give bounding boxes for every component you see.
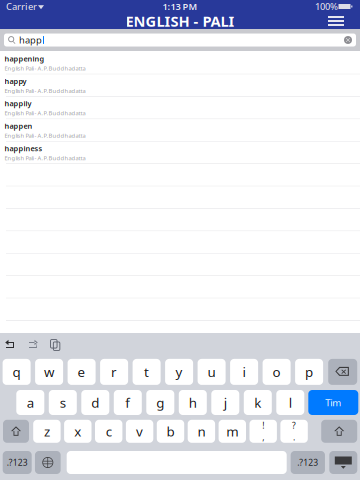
button[interactable]: Redo bbox=[26, 339, 40, 351]
staticText: x bbox=[74, 422, 81, 440]
button[interactable]: p bbox=[295, 359, 323, 385]
staticText: d bbox=[91, 394, 99, 411]
button[interactable]: b bbox=[157, 420, 184, 443]
staticText: m bbox=[226, 422, 238, 440]
button[interactable]: Hide keyboard bbox=[329, 451, 357, 474]
staticText: .?123 bbox=[297, 457, 318, 468]
staticText: happen bbox=[4, 121, 32, 131]
button[interactable]: Tim bbox=[308, 390, 358, 415]
staticText: English Pali - A.P.Buddhadatta bbox=[4, 64, 85, 72]
button[interactable]: happy bbox=[0, 74, 360, 97]
button[interactable]: x bbox=[64, 420, 91, 443]
button[interactable]: Next keyboard bbox=[35, 451, 61, 474]
button[interactable]: h bbox=[179, 390, 207, 415]
staticText: happy bbox=[4, 76, 26, 86]
staticText: 100% bbox=[315, 0, 338, 13]
staticText: r bbox=[111, 363, 117, 381]
staticText: q bbox=[13, 363, 21, 381]
staticText: n bbox=[197, 422, 205, 440]
staticText: happiness bbox=[4, 143, 42, 153]
staticText: English Pali - A.P.Buddhadatta bbox=[4, 154, 85, 162]
button[interactable]: ? bbox=[280, 420, 308, 443]
button[interactable]: .?123 bbox=[3, 451, 32, 474]
staticText: English Pali - A.P.Buddhadatta bbox=[4, 132, 85, 139]
button[interactable]: n bbox=[188, 420, 215, 443]
button[interactable]: t bbox=[133, 359, 161, 385]
button[interactable]: j bbox=[211, 390, 239, 415]
button[interactable]: happening bbox=[0, 52, 360, 74]
button[interactable]: happen bbox=[0, 119, 360, 142]
button[interactable]: .?123 bbox=[291, 451, 325, 474]
staticText: .?123 bbox=[7, 457, 28, 468]
button[interactable]: c bbox=[95, 420, 122, 443]
staticText: c bbox=[106, 422, 112, 440]
staticText: happily bbox=[4, 98, 31, 108]
button[interactable]: o bbox=[263, 359, 291, 385]
button[interactable]: y bbox=[165, 359, 193, 385]
staticText: o bbox=[273, 363, 281, 381]
staticText: s bbox=[60, 394, 66, 411]
button[interactable]: g bbox=[146, 390, 174, 415]
button[interactable]: w bbox=[35, 359, 63, 385]
staticText: ! bbox=[262, 420, 264, 431]
staticText: Tim bbox=[325, 396, 341, 409]
staticText: Carrier bbox=[6, 0, 37, 13]
button[interactable]: v bbox=[126, 420, 153, 443]
staticText: t bbox=[144, 363, 149, 381]
button[interactable]: f bbox=[114, 390, 142, 415]
staticText: i bbox=[243, 363, 246, 381]
button[interactable]: s bbox=[49, 390, 77, 415]
button[interactable]: happ bbox=[4, 33, 356, 46]
button[interactable]: l bbox=[276, 390, 304, 415]
staticText: . bbox=[293, 431, 295, 443]
button[interactable]: e bbox=[68, 359, 96, 385]
staticText: y bbox=[176, 363, 183, 381]
staticText: h bbox=[189, 394, 197, 411]
staticText: English Pali - A.P.Buddhadatta bbox=[4, 87, 85, 95]
staticText: a bbox=[27, 394, 34, 411]
button[interactable]: u bbox=[198, 359, 226, 385]
button[interactable]: Paste bbox=[49, 339, 60, 351]
button[interactable]: happily bbox=[0, 97, 360, 119]
staticText: l bbox=[289, 394, 292, 411]
staticText: u bbox=[208, 363, 216, 381]
button[interactable]: a bbox=[16, 390, 44, 415]
staticText: f bbox=[125, 394, 130, 411]
staticText: z bbox=[44, 422, 50, 440]
button[interactable]: k bbox=[244, 390, 272, 415]
staticText: English Pali - A.P.Buddhadatta bbox=[4, 109, 85, 117]
button[interactable]: i bbox=[230, 359, 258, 385]
button[interactable]: d bbox=[81, 390, 109, 415]
button[interactable]: q bbox=[3, 359, 31, 385]
button[interactable]: Menu bbox=[328, 13, 350, 29]
staticText: , bbox=[262, 431, 264, 443]
button[interactable]: Shift bbox=[321, 420, 357, 443]
staticText: 1:13 PM bbox=[162, 0, 197, 13]
staticText: e bbox=[78, 363, 86, 381]
button[interactable]: m bbox=[219, 420, 246, 443]
button[interactable]: Undo bbox=[4, 339, 18, 351]
staticText: k bbox=[254, 394, 261, 411]
staticText: ENGLISH - PALI bbox=[125, 11, 234, 31]
button[interactable]: Delete bbox=[328, 359, 357, 385]
staticText: j bbox=[224, 394, 227, 411]
staticText: happ bbox=[19, 34, 42, 46]
staticText: ? bbox=[292, 420, 296, 431]
staticText: happening bbox=[4, 54, 44, 64]
button[interactable]: r bbox=[100, 359, 128, 385]
staticText: w bbox=[44, 363, 54, 381]
staticText: b bbox=[166, 422, 174, 440]
button[interactable]: Shift bbox=[3, 420, 29, 443]
button[interactable]: ! bbox=[249, 420, 277, 443]
button[interactable]: z bbox=[33, 420, 61, 443]
staticText: g bbox=[156, 394, 164, 411]
staticText: p bbox=[305, 363, 313, 381]
button[interactable]: happiness bbox=[0, 142, 360, 164]
staticText: v bbox=[136, 422, 143, 440]
